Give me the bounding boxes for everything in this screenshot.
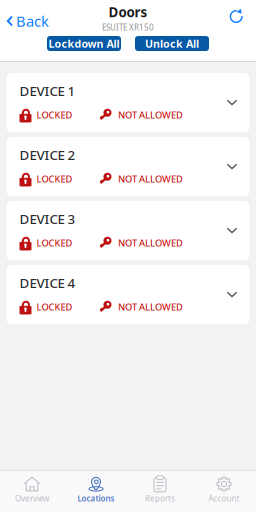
button[interactable]: Overview <box>0 470 64 512</box>
staticText: Back <box>16 11 49 31</box>
button[interactable]: DEVICE 4 <box>6 265 249 324</box>
staticText: DEVICE 1 <box>19 82 75 100</box>
staticText: LOCKED <box>36 109 72 121</box>
staticText: Overview <box>15 493 49 504</box>
staticText: Lockdown All <box>48 36 119 51</box>
button[interactable]: Lockdown All <box>47 36 121 51</box>
button[interactable]: DEVICE 1 <box>6 73 249 132</box>
staticText: LOCKED <box>36 301 72 313</box>
staticText: NOT ALLOWED <box>118 109 183 121</box>
button[interactable]: Back <box>0 1 59 31</box>
staticText: Reports <box>145 493 175 504</box>
button[interactable]: Refresh <box>219 1 256 31</box>
staticText: NOT ALLOWED <box>118 173 183 185</box>
staticText: Doors <box>108 3 147 21</box>
staticText: DEVICE 2 <box>19 146 75 164</box>
staticText: DEVICE 3 <box>19 210 75 228</box>
button[interactable]: Account <box>192 470 256 512</box>
staticText: Account <box>208 493 239 504</box>
button[interactable]: Unlock All <box>135 36 209 51</box>
button[interactable]: DEVICE 3 <box>6 201 249 260</box>
staticText: Unlock All <box>145 36 199 51</box>
staticText: LOCKED <box>36 237 72 249</box>
button[interactable]: Reports <box>128 470 192 512</box>
staticText: LOCKED <box>36 173 72 185</box>
staticText: NOT ALLOWED <box>118 237 183 249</box>
staticText: NOT ALLOWED <box>118 301 183 313</box>
staticText: Locations <box>77 493 114 504</box>
staticText: DEVICE 4 <box>19 274 75 292</box>
staticText: ESUITE XR150 <box>102 22 154 33</box>
button[interactable]: DEVICE 2 <box>6 137 249 196</box>
button[interactable]: Locations <box>64 470 128 512</box>
